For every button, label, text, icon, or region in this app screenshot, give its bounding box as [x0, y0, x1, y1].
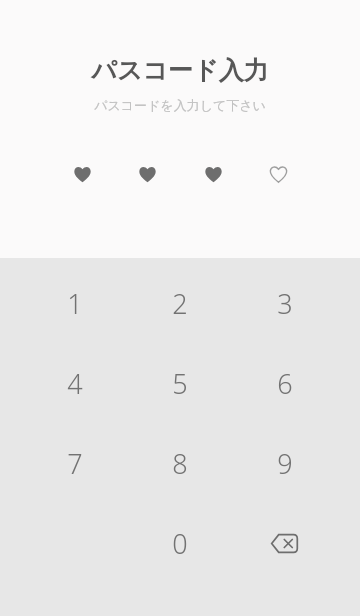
staticText: 9 [277, 445, 293, 482]
button[interactable]: 8 [127, 423, 232, 503]
staticText: 0 [172, 525, 188, 562]
staticText: パスコードを入力して下さい [94, 97, 266, 113]
button[interactable]: 6 [232, 343, 337, 423]
staticText: 3 [277, 285, 293, 322]
staticText: 2 [172, 285, 188, 322]
button[interactable]: 1 [22, 263, 127, 343]
button[interactable]: 2 [127, 263, 232, 343]
button[interactable]: 7 [22, 423, 127, 503]
staticText: 8 [172, 445, 188, 482]
staticText: パスコード入力 [91, 55, 269, 86]
button[interactable]: 0 [127, 503, 232, 583]
staticText: 7 [67, 445, 83, 482]
staticText: 6 [277, 365, 293, 402]
button[interactable]: 9 [232, 423, 337, 503]
staticText: 1 [67, 285, 83, 322]
staticText: 5 [172, 365, 188, 402]
button[interactable]: 4 [22, 343, 127, 423]
staticText: 4 [67, 365, 83, 402]
button[interactable]: Delete [232, 503, 337, 583]
button[interactable]: 3 [232, 263, 337, 343]
button[interactable]: 5 [127, 343, 232, 423]
